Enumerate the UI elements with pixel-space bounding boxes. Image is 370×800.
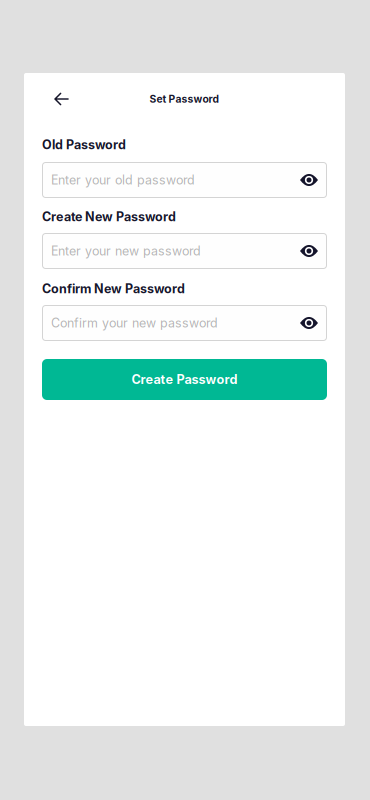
staticText: Enter your old password bbox=[51, 172, 195, 188]
button[interactable]: Show Old Password bbox=[300, 174, 318, 186]
staticText: Create Password bbox=[131, 372, 237, 387]
staticText: Confirm New Password bbox=[42, 281, 185, 296]
staticText: Set Password bbox=[149, 93, 219, 105]
button[interactable]: Create Password bbox=[42, 359, 327, 400]
button[interactable]: Back bbox=[44, 82, 79, 116]
button[interactable]: Show Confirm New Password bbox=[300, 317, 318, 329]
staticText: Old Password bbox=[42, 137, 126, 152]
button[interactable]: Show Create New Password bbox=[300, 245, 318, 257]
staticText: Create New Password bbox=[42, 209, 176, 224]
staticText: Confirm your new password bbox=[51, 315, 218, 331]
staticText: Enter your new password bbox=[51, 243, 201, 259]
